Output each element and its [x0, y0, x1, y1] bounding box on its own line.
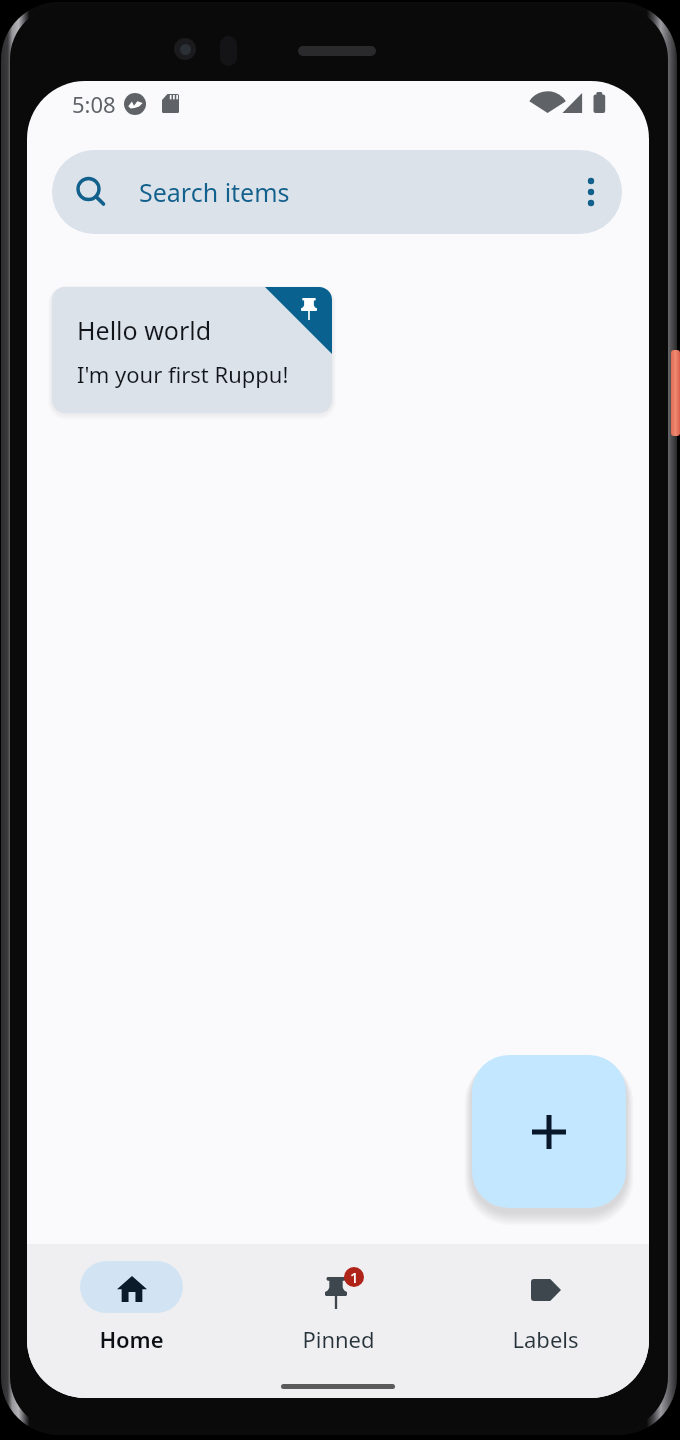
staticText: 1 — [350, 1267, 359, 1287]
staticText: 5:08 — [72, 89, 116, 119]
button[interactable]: Labels — [442, 1244, 649, 1364]
button[interactable]: 1 — [235, 1244, 442, 1364]
button[interactable]: Add note — [472, 1055, 626, 1208]
staticText: Home — [99, 1324, 164, 1354]
staticText: Search items — [139, 175, 290, 209]
button[interactable]: Hello world — [52, 287, 332, 413]
button[interactable]: More options — [560, 150, 622, 234]
staticText: Labels — [512, 1324, 579, 1354]
button[interactable]: Search items — [52, 150, 622, 234]
staticText: Pinned — [302, 1324, 375, 1354]
button[interactable]: Home — [27, 1244, 235, 1364]
staticText: Hello world — [77, 313, 212, 347]
staticText: I'm your first Ruppu! — [77, 359, 289, 389]
